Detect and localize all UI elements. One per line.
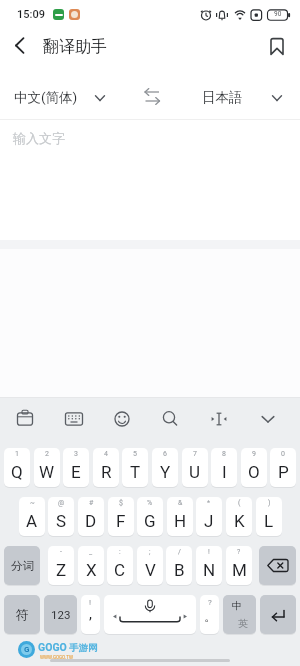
staticText: : bbox=[119, 548, 121, 556]
staticText: P bbox=[278, 462, 289, 482]
button[interactable] bbox=[12, 37, 30, 55]
staticText: 9 bbox=[252, 450, 256, 458]
staticText: A bbox=[26, 511, 38, 531]
staticText: , bbox=[89, 605, 92, 623]
staticText: ) bbox=[268, 499, 271, 507]
staticText: 2 bbox=[45, 450, 49, 458]
button[interactable] bbox=[259, 546, 296, 585]
staticText: & bbox=[178, 499, 183, 507]
staticText: N bbox=[203, 560, 216, 580]
staticText: Z bbox=[56, 560, 67, 580]
button[interactable]: ) bbox=[256, 497, 282, 536]
staticText: M bbox=[232, 560, 247, 580]
staticText: ? bbox=[237, 548, 241, 556]
button[interactable]: ; bbox=[137, 546, 163, 585]
staticText: C bbox=[114, 560, 126, 580]
button[interactable]: 中 bbox=[223, 595, 256, 634]
button[interactable]: ! bbox=[81, 595, 100, 634]
button[interactable]: 9 bbox=[241, 448, 267, 487]
staticText: F bbox=[116, 511, 126, 531]
staticText: 符 bbox=[16, 607, 29, 623]
staticText: 8 bbox=[222, 450, 226, 458]
staticText: G bbox=[24, 645, 30, 654]
staticText: D bbox=[85, 511, 97, 531]
button[interactable]: * bbox=[196, 497, 222, 536]
button[interactable] bbox=[266, 36, 288, 58]
staticText: 123 bbox=[51, 608, 71, 621]
staticText: 1 bbox=[15, 450, 19, 458]
button[interactable] bbox=[260, 595, 296, 634]
button[interactable]: ? bbox=[226, 546, 252, 585]
staticText: 中文(简体) bbox=[14, 89, 78, 106]
staticText: Y bbox=[160, 462, 171, 482]
staticText: $ bbox=[119, 499, 123, 507]
staticText: % bbox=[147, 499, 153, 507]
button[interactable] bbox=[141, 86, 163, 108]
button[interactable]: ~ bbox=[19, 497, 45, 536]
staticText: B bbox=[174, 560, 185, 580]
button[interactable]: 7 bbox=[182, 448, 208, 487]
staticText: WWW.GOGO.TW bbox=[40, 655, 73, 660]
staticText: 7 bbox=[193, 450, 197, 458]
staticText: - bbox=[60, 548, 62, 556]
staticText: # bbox=[89, 499, 94, 507]
button[interactable]: / bbox=[166, 546, 192, 585]
button[interactable]: % bbox=[137, 497, 163, 536]
button[interactable]: 0 bbox=[270, 448, 296, 487]
button[interactable]: 3 bbox=[63, 448, 89, 487]
button[interactable]: 1 bbox=[4, 448, 30, 487]
staticText: 90 bbox=[274, 10, 282, 18]
button[interactable]: 中文(简体) bbox=[0, 72, 135, 118]
staticText: 0 bbox=[281, 450, 285, 458]
button[interactable]: 123 bbox=[44, 595, 77, 634]
staticText: 15:09 bbox=[17, 8, 45, 21]
staticText: J bbox=[204, 511, 214, 531]
staticText: H bbox=[174, 511, 187, 531]
button[interactable]: # bbox=[78, 497, 104, 536]
button[interactable]: : bbox=[107, 546, 133, 585]
staticText: U bbox=[189, 462, 201, 482]
staticText: ! bbox=[208, 548, 210, 556]
staticText: V bbox=[145, 560, 156, 580]
staticText: _ bbox=[89, 548, 93, 556]
staticText: L bbox=[264, 511, 274, 531]
staticText: W bbox=[39, 462, 55, 482]
staticText: 手游网 bbox=[69, 642, 98, 654]
button[interactable] bbox=[104, 595, 196, 634]
staticText: ! bbox=[89, 598, 92, 607]
staticText: ~ bbox=[30, 499, 35, 507]
staticText: R bbox=[101, 462, 112, 482]
button[interactable]: ( bbox=[226, 497, 252, 536]
staticText: I bbox=[222, 462, 227, 482]
staticText: E bbox=[71, 462, 81, 482]
button[interactable]: _ bbox=[78, 546, 104, 585]
staticText: 翻译助手 bbox=[43, 37, 107, 57]
staticText: 5 bbox=[133, 450, 137, 458]
button[interactable]: & bbox=[167, 497, 193, 536]
button[interactable]: $ bbox=[108, 497, 134, 536]
staticText: K bbox=[234, 511, 245, 531]
button[interactable]: 符 bbox=[4, 595, 40, 634]
button[interactable]: ? bbox=[200, 595, 219, 634]
button[interactable]: 4 bbox=[93, 448, 119, 487]
staticText: 分词 bbox=[11, 559, 34, 573]
staticText: 。 bbox=[204, 608, 217, 624]
staticText: G bbox=[144, 511, 156, 531]
staticText: X bbox=[86, 560, 97, 580]
staticText: 6 bbox=[163, 450, 167, 458]
button[interactable]: 6 bbox=[152, 448, 178, 487]
staticText: ? bbox=[208, 598, 212, 607]
staticText: @ bbox=[58, 499, 65, 507]
button[interactable]: @ bbox=[48, 497, 74, 536]
button[interactable]: 分词 bbox=[4, 546, 40, 585]
button[interactable]: - bbox=[48, 546, 74, 585]
staticText: ; bbox=[149, 548, 151, 556]
staticText: O bbox=[248, 462, 260, 482]
button[interactable]: 2 bbox=[34, 448, 60, 487]
button[interactable]: ! bbox=[196, 546, 222, 585]
staticText: S bbox=[56, 511, 67, 531]
staticText: * bbox=[207, 499, 211, 507]
button[interactable]: 8 bbox=[211, 448, 237, 487]
button[interactable]: 日本語 bbox=[180, 72, 300, 118]
button[interactable]: 5 bbox=[122, 448, 148, 487]
